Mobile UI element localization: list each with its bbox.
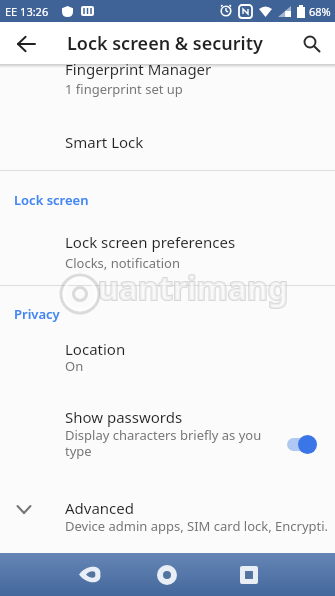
button[interactable] xyxy=(146,553,188,596)
staticText: Fingerprint Manager xyxy=(65,59,212,79)
staticText: Lock screen xyxy=(14,191,89,209)
staticText: uantrimang xyxy=(98,266,288,310)
staticText: Display characters briefly as you type xyxy=(65,426,285,459)
staticText: 68% xyxy=(309,4,331,19)
button[interactable] xyxy=(0,330,335,395)
button[interactable] xyxy=(0,225,335,285)
button[interactable] xyxy=(0,56,335,110)
staticText: Smart Lock xyxy=(65,132,144,152)
staticText: Show passwords xyxy=(65,407,183,427)
staticText: Advanced xyxy=(65,498,135,518)
staticText: Lock screen preferences xyxy=(65,232,236,252)
button[interactable] xyxy=(69,553,111,596)
staticText: Lock screen & security xyxy=(67,31,263,56)
staticText: Clocks, notification xyxy=(65,254,180,272)
staticText: uantrimang xyxy=(98,266,288,310)
button[interactable] xyxy=(0,395,335,480)
staticText: Device admin apps, SIM card lock, Encryp… xyxy=(65,517,329,535)
button[interactable] xyxy=(228,553,270,596)
staticText: Location xyxy=(65,339,126,359)
button[interactable] xyxy=(2,25,50,63)
button[interactable] xyxy=(0,480,335,545)
staticText: 1 fingerprint set up xyxy=(65,80,183,98)
button[interactable] xyxy=(291,25,333,63)
staticText: EE 13:26 xyxy=(5,4,49,19)
staticText: Privacy xyxy=(14,305,60,323)
staticText: On xyxy=(65,357,84,375)
button[interactable] xyxy=(285,433,317,456)
button[interactable] xyxy=(0,110,335,170)
